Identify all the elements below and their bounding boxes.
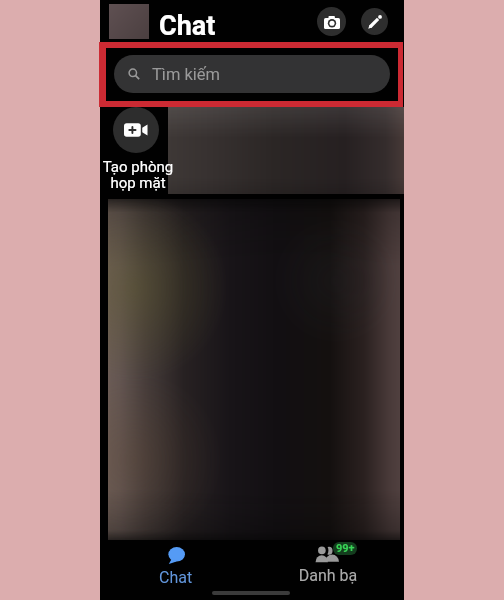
staticText: Chat (159, 10, 216, 42)
staticText: Chat (159, 568, 193, 587)
button[interactable]: Chat (117, 540, 235, 590)
button[interactable]: Camera (317, 7, 346, 36)
button[interactable]: Tạo phòng họp mặt (113, 107, 159, 153)
staticText: Tạo phòng họp mặt (100, 158, 176, 191)
button[interactable]: 99+ (268, 540, 388, 590)
staticText: Tìm kiếm (152, 65, 221, 84)
button[interactable]: New message (361, 8, 388, 35)
staticText: Danh bạ (281, 566, 375, 585)
button[interactable]: Tìm kiếm (114, 55, 390, 93)
button[interactable]: Profile (109, 4, 149, 39)
staticText: 99+ (336, 542, 355, 555)
